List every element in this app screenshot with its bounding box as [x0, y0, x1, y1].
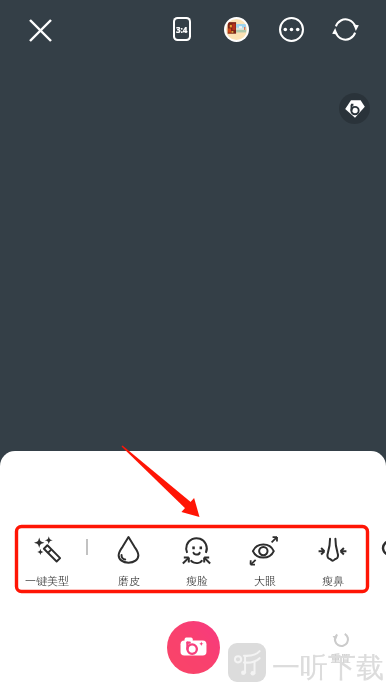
button[interactable]: Reset [315, 629, 367, 681]
staticText: 瘦鼻 [322, 574, 344, 588]
staticText: 一键美型 [25, 574, 69, 588]
button[interactable]: 瘦鼻 [298, 535, 366, 597]
staticText: 大眼 [254, 574, 276, 588]
button[interactable]: More options [273, 11, 309, 47]
button[interactable]: Aspect ratio 3 to 4 [164, 11, 200, 47]
button[interactable]: 大眼 [230, 535, 298, 597]
button[interactable]: 一键美型 [0, 535, 94, 597]
staticText: 磨皮 [118, 574, 140, 588]
button[interactable]: Close [22, 12, 58, 48]
button[interactable]: 瘦脸 [162, 535, 230, 597]
button[interactable]: 磨皮 [94, 535, 162, 597]
button[interactable]: Switch camera [327, 11, 363, 47]
button[interactable]: Compare with original [339, 93, 370, 124]
button[interactable]: Gallery [218, 11, 254, 47]
button[interactable]: Take photo [167, 621, 220, 674]
staticText: 一听下载 [272, 650, 384, 685]
staticText: 3:4 [176, 24, 188, 35]
staticText: 瘦脸 [186, 574, 208, 588]
staticText: 重置 [331, 652, 351, 665]
